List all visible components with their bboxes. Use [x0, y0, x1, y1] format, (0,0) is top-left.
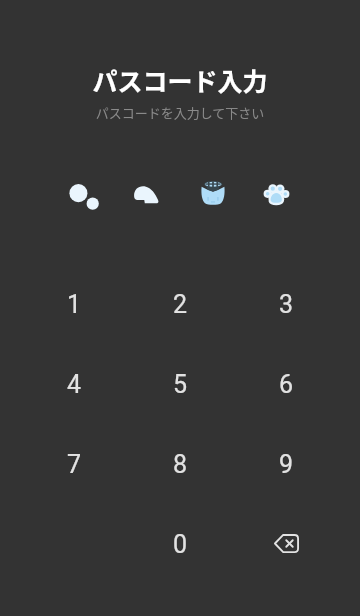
button[interactable]: 3	[238, 268, 334, 340]
staticText: 2	[173, 290, 188, 319]
staticText: 1	[67, 290, 82, 319]
staticText: 3	[279, 290, 294, 319]
button[interactable]: 6	[238, 348, 334, 420]
staticText: 7	[67, 450, 82, 479]
button[interactable]: 8	[132, 428, 228, 500]
staticText: パスコードを入力して下さい	[0, 103, 360, 122]
button[interactable]: 0	[132, 508, 228, 580]
staticText: パスコード入力	[0, 62, 360, 98]
staticText: 9	[279, 450, 294, 479]
button[interactable]: 5	[132, 348, 228, 420]
button[interactable]: 4	[26, 348, 122, 420]
button[interactable]: 7	[26, 428, 122, 500]
staticText: 4	[67, 370, 82, 399]
button[interactable]: Delete	[238, 508, 334, 580]
staticText: 8	[173, 450, 188, 479]
staticText: 6	[279, 370, 294, 399]
button[interactable]: 2	[132, 268, 228, 340]
staticText: 0	[173, 530, 188, 559]
button[interactable]: 1	[26, 268, 122, 340]
staticText: 5	[173, 370, 188, 399]
button[interactable]: 9	[238, 428, 334, 500]
